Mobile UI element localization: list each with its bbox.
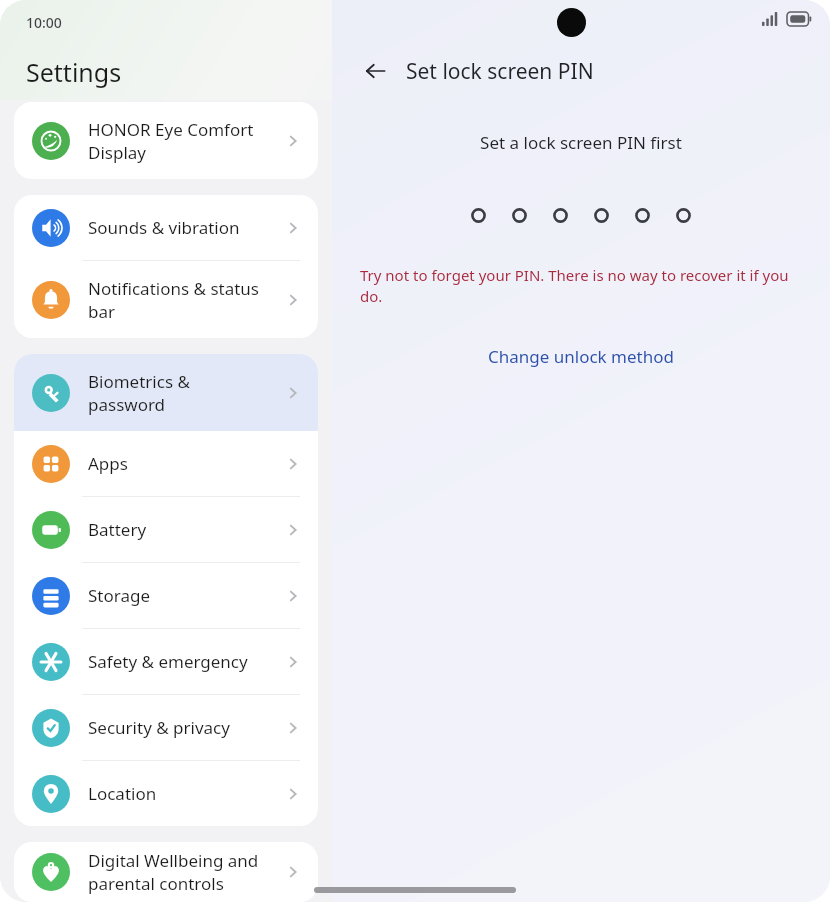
staticText: Try not to forget your PIN. There is no … (360, 265, 798, 307)
staticText: Safety & emergency (88, 650, 282, 673)
button[interactable]: Sounds & vibration (14, 195, 318, 260)
staticText: Sounds & vibration (88, 216, 282, 239)
staticText: Security & privacy (88, 716, 282, 739)
button[interactable]: Security & privacy (14, 695, 318, 760)
button[interactable]: Change unlock method (476, 339, 686, 374)
staticText: Biometrics & (88, 370, 190, 393)
staticText: Set a lock screen PIN first (332, 131, 830, 154)
staticText: Digital Wellbeing and (88, 849, 259, 872)
staticText: Location (88, 782, 282, 805)
staticText: HONOR Eye Comfort (88, 118, 254, 141)
staticText: 10:00 (26, 13, 62, 32)
button[interactable]: Apps (14, 431, 318, 496)
staticText: Notifications & status (88, 277, 260, 300)
staticText: Storage (88, 584, 282, 607)
button[interactable]: Battery (14, 497, 318, 562)
button[interactable]: Location (14, 761, 318, 826)
staticText: Display (88, 141, 146, 164)
staticText: Apps (88, 452, 282, 475)
button[interactable]: Biometrics & (14, 354, 318, 431)
button[interactable]: Safety & emergency (14, 629, 318, 694)
staticText: password (88, 393, 166, 416)
staticText: Set lock screen PIN (406, 57, 594, 86)
staticText: Change unlock method (488, 345, 674, 368)
button[interactable]: Digital Wellbeing and (14, 842, 318, 902)
staticText: parental controls (88, 872, 224, 895)
button[interactable]: Notifications & status (14, 261, 318, 338)
staticText: Settings (26, 55, 122, 89)
staticText: bar (88, 300, 116, 323)
button[interactable]: HONOR Eye Comfort (14, 102, 318, 179)
button[interactable]: Storage (14, 563, 318, 628)
staticText: Battery (88, 518, 282, 541)
button[interactable]: Back (358, 54, 392, 88)
